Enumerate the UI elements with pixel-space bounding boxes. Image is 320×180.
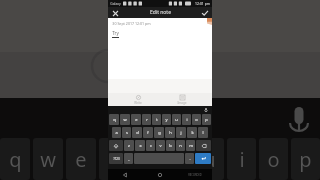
staticText: q: [113, 117, 116, 122]
button[interactable]: z: [124, 140, 134, 151]
button[interactable]: f: [143, 127, 153, 138]
staticText: .: [189, 156, 191, 161]
staticText: u: [175, 117, 178, 122]
button[interactable]: m: [186, 140, 195, 151]
staticText: f: [147, 130, 149, 135]
button[interactable]: e: [131, 114, 141, 125]
staticText: t: [156, 117, 158, 122]
button[interactable]: p: [202, 114, 211, 125]
button[interactable]: Home: [142, 169, 177, 180]
staticText: ,: [128, 156, 130, 161]
staticText: d: [136, 130, 139, 135]
button[interactable]: a: [112, 127, 121, 138]
button[interactable]: Enter: [195, 153, 211, 164]
staticText: x: [139, 143, 142, 148]
button[interactable]: .: [185, 153, 194, 164]
staticText: c: [150, 143, 152, 148]
staticText: n: [179, 143, 182, 148]
staticText: y: [165, 117, 168, 122]
button[interactable]: x: [135, 140, 145, 151]
button[interactable]: Shift: [109, 140, 123, 151]
staticText: 12:01 pm: [195, 1, 210, 6]
staticText: i: [186, 117, 188, 122]
staticText: a: [115, 130, 118, 135]
button[interactable]: ,: [124, 153, 133, 164]
staticText: s: [126, 130, 128, 135]
staticText: w: [40, 146, 56, 173]
staticText: i: [239, 146, 245, 173]
staticText: r: [146, 117, 148, 122]
staticText: l: [202, 130, 204, 135]
staticText: j: [180, 130, 182, 135]
button[interactable]: s: [122, 127, 131, 138]
staticText: o: [267, 146, 280, 173]
button[interactable]: h: [165, 127, 175, 138]
staticText: 30 Sept 2017 12:01 pm: [112, 21, 151, 26]
button[interactable]: Close: [110, 8, 120, 18]
staticText: Try: [112, 30, 119, 36]
button[interactable]: q: [109, 114, 119, 125]
staticText: Image: [177, 101, 187, 105]
button[interactable]: o: [192, 114, 201, 125]
staticText: p: [205, 117, 208, 122]
button[interactable]: Save: [200, 8, 210, 18]
button[interactable]: n: [176, 140, 185, 151]
staticText: g: [158, 130, 161, 135]
button[interactable]: y: [162, 114, 171, 125]
staticText: h: [169, 130, 172, 135]
staticText: v: [159, 143, 162, 148]
button[interactable]: Image: [172, 94, 192, 106]
staticText: t: [142, 146, 150, 173]
button[interactable]: u: [172, 114, 181, 125]
button[interactable]: t: [152, 114, 161, 125]
staticText: e: [135, 117, 138, 122]
button[interactable]: i: [182, 114, 191, 125]
staticText: r: [109, 146, 118, 173]
button[interactable]: k: [187, 127, 197, 138]
staticText: RECORDED: [188, 173, 202, 177]
button[interactable]: j: [176, 127, 186, 138]
staticText: z: [128, 143, 130, 148]
staticText: Galaxy: [110, 1, 121, 6]
button[interactable]: v: [156, 140, 165, 151]
staticText: p: [299, 146, 312, 173]
button[interactable]: l: [198, 127, 208, 138]
staticText: m: [189, 143, 193, 148]
staticText: k: [191, 130, 194, 135]
staticText: y: [172, 146, 183, 173]
staticText: ?123: [113, 157, 120, 161]
button[interactable]: b: [166, 140, 175, 151]
staticText: q: [9, 146, 22, 173]
staticText: Write: [134, 101, 142, 105]
button[interactable]: Back: [108, 169, 142, 180]
staticText: w: [123, 117, 127, 122]
button[interactable]: c: [146, 140, 155, 151]
button[interactable]: ?123: [109, 153, 123, 164]
staticText: Edit note: [150, 9, 171, 16]
button[interactable]: Backspace: [196, 140, 211, 151]
button[interactable]: w: [120, 114, 130, 125]
staticText: o: [195, 117, 198, 122]
button[interactable]: Write: [128, 94, 148, 106]
button[interactable]: g: [154, 127, 164, 138]
button[interactable]: r: [142, 114, 151, 125]
button[interactable]: d: [132, 127, 142, 138]
staticText: b: [169, 143, 172, 148]
staticText: u: [203, 146, 216, 173]
staticText: e: [75, 146, 87, 173]
button[interactable]: Voice input: [202, 106, 209, 113]
